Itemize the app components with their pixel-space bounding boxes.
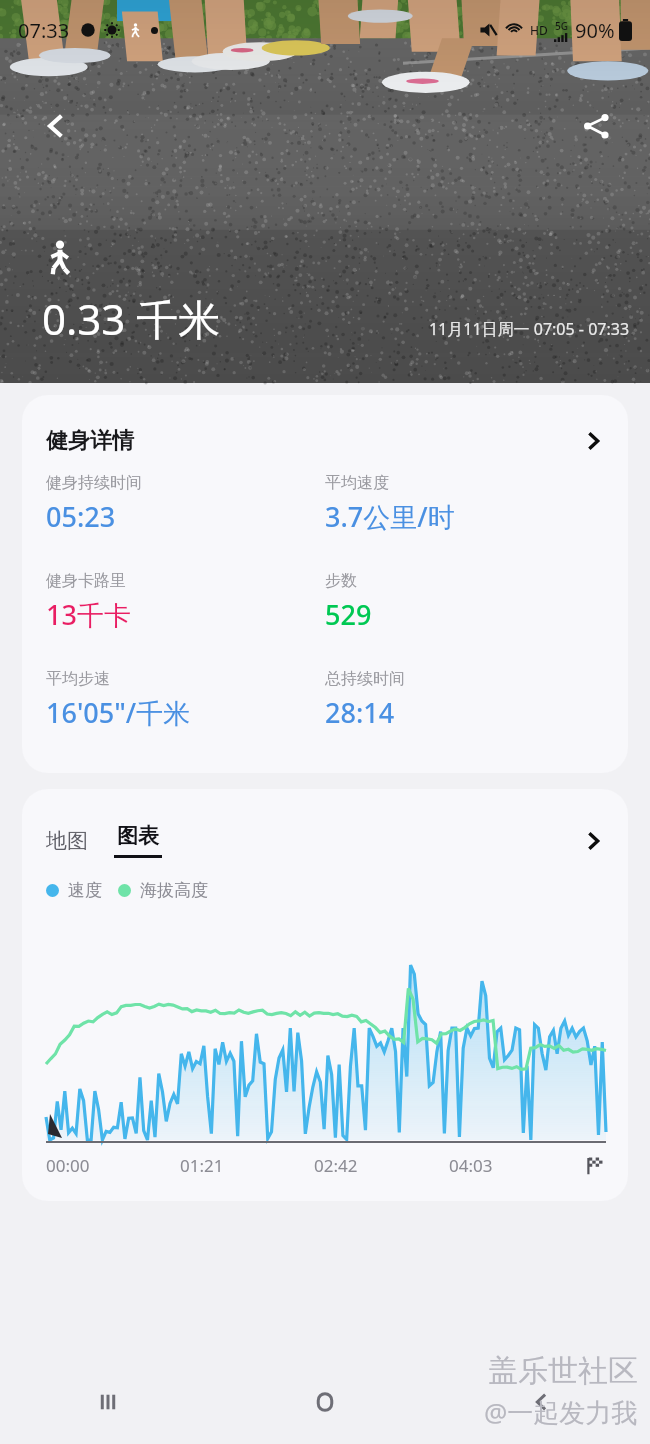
button[interactable]: Back [433, 1360, 650, 1444]
button[interactable]: 总持续时间 [325, 669, 604, 731]
staticText: 平均步速 [46, 669, 110, 689]
button[interactable]: Recents [0, 1360, 216, 1444]
staticText: 90% [575, 17, 615, 44]
staticText: 00:00 [46, 1154, 180, 1177]
button[interactable]: 平均步速 [46, 669, 325, 731]
staticText: 总持续时间 [325, 669, 405, 689]
staticText: 11月11日周一 07:05 - 07:33 [429, 318, 630, 340]
staticText: HD [530, 22, 548, 38]
staticText: 速度 [68, 880, 102, 901]
staticText: 3.7公里/时 [325, 498, 455, 535]
staticText: 健身卡路里 [46, 571, 126, 591]
staticText: 02:42 [314, 1154, 449, 1177]
button[interactable]: Home [216, 1360, 433, 1444]
button[interactable]: 图表 [114, 823, 162, 858]
staticText: 13千卡 [46, 596, 131, 633]
staticText: 01:21 [180, 1154, 314, 1177]
staticText: 健身持续时间 [46, 473, 142, 493]
staticText: 28:14 [325, 694, 395, 731]
staticText: 0.33 千米 [42, 290, 221, 347]
staticText: 盖乐世社区 [488, 1352, 638, 1390]
staticText: 5G [555, 19, 568, 33]
staticText: 海拔高度 [140, 880, 208, 901]
button[interactable]: 健身详情 [22, 395, 628, 473]
button[interactable]: 地图 [46, 828, 92, 854]
staticText: 地图 [46, 828, 88, 854]
staticText: 图表 [117, 823, 159, 849]
staticText: 05:23 [46, 498, 116, 535]
button[interactable]: 健身卡路里 [46, 571, 325, 633]
staticText: 04:03 [449, 1154, 584, 1177]
staticText: 07:33 [18, 17, 70, 44]
button[interactable]: Back [30, 100, 82, 152]
staticText: 平均速度 [325, 473, 389, 493]
button[interactable]: 平均速度 [325, 473, 604, 535]
staticText: 步数 [325, 571, 357, 591]
staticText: 健身详情 [46, 427, 134, 455]
button[interactable]: 健身持续时间 [46, 473, 325, 535]
button[interactable]: Open chart [580, 828, 606, 854]
staticText: @一起发力我 [484, 1394, 638, 1430]
staticText: 16'05"/千米 [46, 694, 191, 731]
button[interactable]: Share [570, 100, 622, 152]
button[interactable]: 步数 [325, 571, 604, 633]
staticText: 529 [325, 596, 372, 633]
